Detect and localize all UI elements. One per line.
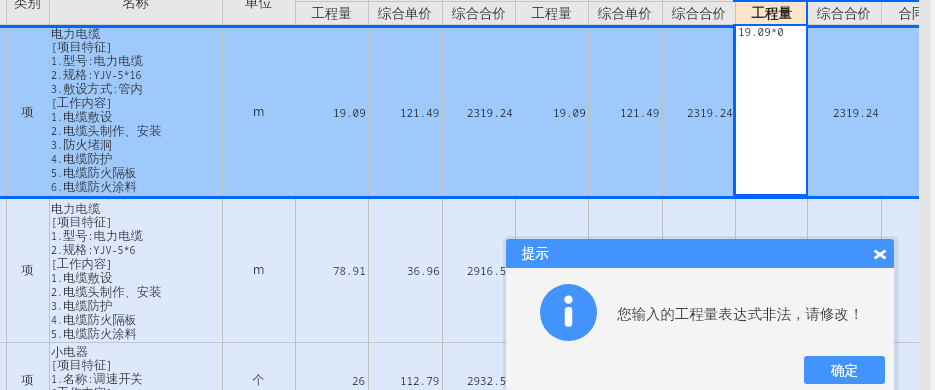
staticText: 19.09	[333, 105, 366, 120]
button[interactable]: 19.09*0	[736, 26, 806, 194]
staticText: 121.49	[620, 105, 660, 120]
staticText: 19.09*0	[738, 24, 784, 39]
staticText: 名称	[122, 0, 149, 11]
staticText: 您输入的工程量表达式非法，请修改！	[617, 305, 864, 323]
staticText: m	[253, 106, 265, 119]
staticText: 2932.54	[467, 373, 513, 388]
staticText: 26	[352, 373, 366, 388]
staticText: 项	[21, 106, 34, 119]
button[interactable]: 确定	[804, 356, 885, 384]
staticText: 单位	[245, 0, 272, 11]
staticText: 电力电缆 [项目特征] 1.型号:电力电缆 2.规格:YJV-5*16 3.敷设…	[51, 28, 162, 195]
staticText: 个	[252, 374, 265, 387]
staticText: 工程量	[751, 5, 792, 22]
staticText: 2319.24	[833, 105, 879, 120]
staticText: 综合合价	[452, 5, 506, 22]
button[interactable]	[735, 0, 807, 25]
button[interactable]: 类别	[6, 0, 49, 12]
staticText: 类别	[14, 0, 41, 11]
staticText: 确定	[831, 362, 858, 379]
button[interactable]: 综合单价	[588, 4, 662, 23]
staticText: 112.79	[400, 373, 440, 388]
button[interactable]: 综合单价	[368, 4, 442, 23]
button[interactable]: 工程量	[295, 4, 368, 23]
staticText: 综合单价	[378, 5, 432, 22]
button[interactable]: 关闭	[869, 243, 891, 265]
button[interactable]: 名称	[49, 0, 222, 12]
staticText: 综合合价	[817, 5, 871, 22]
staticText: 项	[21, 264, 34, 277]
staticText: 电力电缆 [项目特征] 1.型号:电力电缆 2.规格:YJV-5*6 [工作内容…	[51, 203, 162, 342]
staticText: 2319.24	[687, 105, 733, 120]
staticText: 2319.24	[467, 105, 513, 120]
staticText: 工程量	[311, 5, 352, 22]
button[interactable]: 综合合价	[807, 4, 881, 23]
staticText: 合同量	[898, 5, 935, 22]
staticText: 综合单价	[598, 5, 652, 22]
staticText: 2916.53	[467, 263, 513, 278]
button[interactable]: 综合合价	[442, 4, 515, 23]
staticText: 工程量	[531, 5, 572, 22]
staticText: 121.49	[400, 105, 440, 120]
button[interactable]: 单位	[222, 0, 295, 12]
staticText: 19.09	[553, 105, 586, 120]
staticText: 综合合价	[672, 5, 726, 22]
staticText: 78.91	[333, 263, 366, 278]
button[interactable]: 综合合价	[662, 4, 735, 23]
staticText: 提示	[522, 245, 549, 262]
staticText: 项	[21, 374, 34, 387]
staticText: m	[253, 264, 265, 277]
staticText: 36.96	[407, 263, 440, 278]
button[interactable]: 工程量	[735, 4, 807, 23]
button[interactable]: 工程量	[515, 4, 588, 23]
button[interactable]: 合同量	[881, 4, 935, 23]
staticText: 小电器 [项目特征] 1.名称:调速开关 [工作内容]	[51, 346, 143, 390]
